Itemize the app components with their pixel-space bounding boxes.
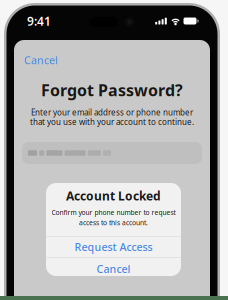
staticText: 9:41 <box>27 13 51 29</box>
staticText: Forgot Password? <box>41 79 183 101</box>
staticText: Cancel <box>96 262 130 276</box>
staticText: Cancel <box>24 53 58 67</box>
staticText: Request Access <box>74 240 152 254</box>
button[interactable]: Request Access <box>46 237 181 257</box>
staticText: that you use with your account to contin… <box>30 117 194 127</box>
button[interactable]: Cancel <box>14 48 68 72</box>
staticText: Enter your email address or phone number <box>31 107 193 118</box>
staticText: Account Locked <box>66 188 161 204</box>
staticText: access to this account. <box>79 218 148 227</box>
button[interactable]: Cancel <box>46 258 181 280</box>
staticText: Confirm your phone number to request <box>51 208 175 217</box>
